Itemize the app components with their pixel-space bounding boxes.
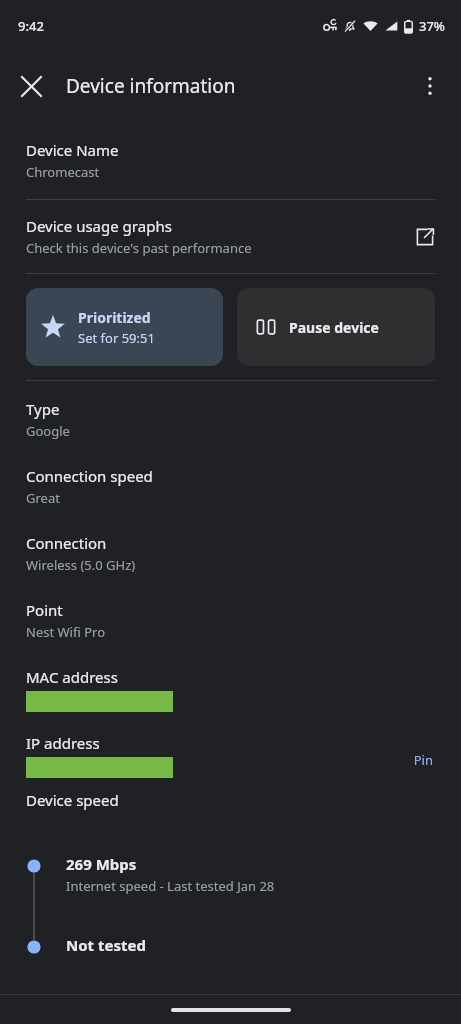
button[interactable]: Pin	[411, 749, 435, 771]
staticText: 37%	[419, 17, 445, 35]
button[interactable]: Prioritized	[26, 288, 223, 366]
staticText: Device speed	[26, 790, 119, 810]
button[interactable]: Device usage graphs	[0, 200, 461, 273]
staticText: Wireless (5.0 GHz)	[26, 556, 136, 574]
staticText: Point	[26, 600, 63, 620]
staticText: Device usage graphs	[26, 216, 172, 236]
staticText: 9:42	[18, 17, 44, 35]
staticText: 269 Mbps	[66, 854, 137, 874]
staticText: Set for 59:51	[78, 329, 155, 347]
staticText: Check this device's past performance	[26, 239, 252, 257]
staticText: Prioritized	[78, 308, 151, 327]
staticText: Device Name	[26, 140, 119, 160]
staticText: MAC address	[26, 667, 118, 687]
staticText: Connection	[26, 533, 107, 553]
staticText: Google	[26, 422, 70, 440]
staticText: Device information	[66, 73, 236, 99]
button[interactable]: Pause device	[237, 288, 435, 366]
button[interactable]: Close	[10, 65, 52, 107]
staticText: Connection speed	[26, 466, 153, 486]
staticText: Pin	[413, 751, 433, 769]
staticText: Pause device	[289, 318, 379, 337]
staticText: Nest Wifi Pro	[26, 623, 106, 641]
staticText: Chromecast	[26, 163, 100, 181]
staticText: Great	[26, 489, 60, 507]
button[interactable]: More options	[409, 65, 451, 107]
staticText: IP address	[26, 733, 100, 753]
staticText: Internet speed - Last tested Jan 28	[66, 877, 275, 895]
staticText: Type	[26, 399, 60, 419]
button[interactable]: Device Name	[0, 140, 461, 199]
staticText: Not tested	[66, 935, 146, 955]
other: Open usage graphs	[415, 227, 435, 247]
